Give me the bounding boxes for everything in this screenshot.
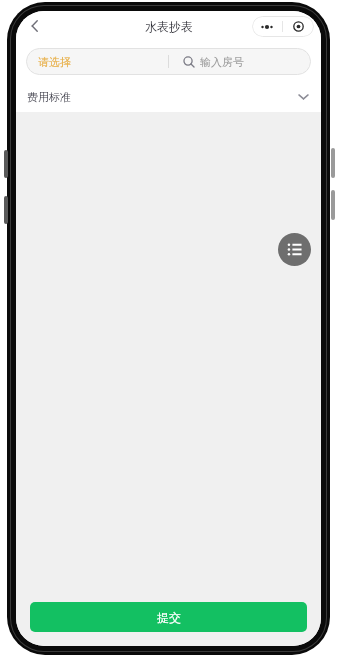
staticText: 提交 bbox=[157, 610, 181, 625]
staticText: 费用标准 bbox=[27, 90, 71, 104]
button[interactable]: List bbox=[278, 233, 311, 266]
button[interactable]: 提交 bbox=[30, 602, 307, 632]
button[interactable]: 请选择 bbox=[26, 48, 168, 75]
button[interactable]: More bbox=[252, 16, 282, 37]
staticText: 请选择 bbox=[38, 55, 71, 69]
button[interactable]: 输入房号 bbox=[169, 48, 311, 75]
button[interactable]: Back bbox=[22, 13, 48, 39]
button[interactable]: 费用标准 bbox=[16, 81, 321, 112]
button[interactable]: Close bbox=[283, 16, 314, 37]
staticText: 输入房号 bbox=[200, 55, 244, 69]
staticText: 水表抄表 bbox=[145, 19, 193, 34]
